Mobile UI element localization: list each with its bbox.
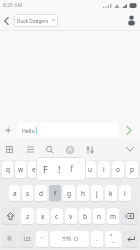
button[interactable]	[0, 11, 12, 30]
button[interactable]: k	[105, 185, 117, 201]
staticText: v	[69, 212, 73, 221]
button[interactable]: i	[98, 161, 110, 178]
staticText: j	[96, 189, 98, 198]
staticText: 空格	[62, 236, 72, 242]
staticText: ×	[52, 17, 55, 24]
staticText: k	[109, 189, 113, 198]
button[interactable]: c	[51, 208, 63, 224]
button[interactable]: w	[15, 161, 26, 178]
staticText: i	[103, 165, 105, 174]
staticText: 123	[23, 236, 31, 242]
button[interactable]	[118, 121, 140, 139]
staticText: r	[47, 165, 50, 174]
button[interactable]	[2, 208, 19, 224]
button[interactable]: ×	[105, 231, 121, 247]
button[interactable]: b	[79, 208, 91, 224]
staticText: c	[55, 212, 59, 221]
button[interactable]: a	[9, 185, 20, 201]
staticText: ×	[110, 232, 113, 238]
staticText: p	[130, 165, 134, 174]
staticText: s	[26, 189, 30, 198]
staticText: x	[41, 212, 45, 221]
staticText: .	[96, 235, 98, 243]
staticText: e	[32, 165, 36, 174]
staticText: z	[26, 212, 30, 221]
button[interactable]: .	[91, 231, 103, 247]
button[interactable]: 123	[19, 231, 34, 247]
staticText: F	[43, 163, 48, 175]
staticText: '	[41, 235, 43, 243]
button[interactable]	[121, 208, 138, 224]
button[interactable]: z	[21, 208, 34, 224]
staticText: 8:25 AM	[3, 2, 22, 9]
staticText: u	[88, 165, 93, 174]
button[interactable]: t	[56, 161, 68, 178]
button[interactable]: '	[36, 231, 48, 247]
button[interactable]: 符	[2, 231, 17, 247]
button[interactable]: o	[112, 161, 124, 178]
button[interactable]: y	[70, 161, 82, 178]
staticText: d	[39, 189, 43, 198]
button[interactable]	[0, 121, 17, 139]
button[interactable]: j	[91, 185, 103, 201]
button[interactable]: Duck Dodgers	[14, 14, 58, 27]
button[interactable]: e	[28, 161, 40, 178]
button[interactable]: x	[36, 208, 49, 224]
staticText: w	[18, 165, 24, 174]
button[interactable]: v	[65, 208, 77, 224]
button[interactable]: q	[2, 161, 13, 178]
staticText: f	[70, 163, 73, 175]
button[interactable]	[41, 139, 59, 160]
button[interactable]	[0, 139, 18, 160]
staticText: 符	[7, 236, 12, 242]
button[interactable]: h	[77, 185, 89, 201]
staticText: q	[6, 165, 10, 174]
button[interactable]: 空格	[50, 231, 89, 247]
button[interactable]: f	[49, 185, 61, 201]
button[interactable]	[21, 139, 39, 160]
staticText: o	[116, 165, 120, 174]
staticText: a	[13, 189, 17, 198]
staticText: Hello	[22, 127, 35, 134]
button[interactable]: d	[35, 185, 47, 201]
button[interactable]: g	[63, 185, 75, 201]
button[interactable]	[61, 139, 79, 160]
button[interactable]: r	[42, 161, 54, 178]
staticText: l	[124, 189, 126, 198]
button[interactable]	[122, 11, 140, 30]
staticText: !	[58, 163, 61, 175]
staticText: h	[81, 189, 86, 198]
button[interactable]: p	[126, 161, 138, 178]
button[interactable]: n	[93, 208, 105, 224]
button[interactable]	[123, 231, 138, 247]
staticText: m	[110, 212, 117, 221]
staticText: f	[54, 189, 57, 198]
staticText: g	[67, 189, 71, 198]
button[interactable]	[120, 139, 140, 160]
button[interactable]: l	[119, 185, 131, 201]
button[interactable]: s	[22, 185, 33, 201]
button[interactable]: Hello	[17, 123, 118, 137]
button[interactable]	[81, 139, 99, 160]
staticText: n	[97, 212, 102, 221]
staticText: b	[83, 212, 87, 221]
staticText: Duck Dodgers	[17, 18, 49, 24]
button[interactable]: u	[84, 161, 96, 178]
button[interactable]: m	[107, 208, 119, 224]
